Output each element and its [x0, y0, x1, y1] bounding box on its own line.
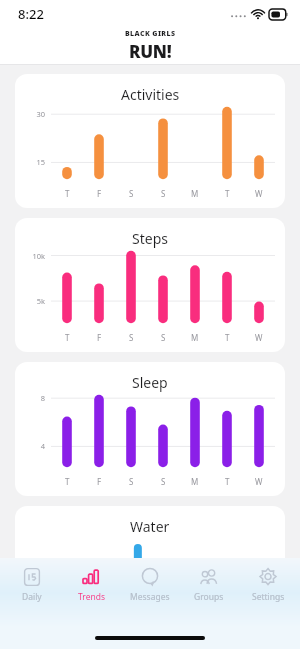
staticText: Steps — [132, 229, 168, 248]
staticText: W — [255, 476, 263, 487]
staticText: T — [225, 332, 230, 343]
staticText: 15 — [19, 157, 45, 167]
staticText: F — [97, 476, 102, 487]
staticText: S — [161, 332, 166, 343]
staticText: 4 — [19, 441, 45, 451]
staticText: 10k — [19, 251, 45, 261]
staticText: T — [225, 188, 230, 199]
staticText: S — [161, 188, 166, 199]
button[interactable]: Sleep — [15, 362, 285, 496]
staticText: Groups — [194, 591, 224, 603]
staticText: Messages — [130, 591, 170, 603]
button[interactable]: Activities — [15, 74, 285, 208]
button[interactable]: Water — [15, 506, 285, 606]
staticText: S — [129, 332, 134, 343]
staticText: Trends — [78, 591, 105, 603]
staticText: T — [225, 476, 230, 487]
staticText: F — [97, 332, 102, 343]
staticText: Activities — [121, 85, 180, 104]
staticText: 5k — [19, 296, 45, 306]
staticText: M — [191, 476, 199, 487]
button[interactable]: Messages — [123, 564, 177, 606]
button[interactable]: Groups — [182, 564, 236, 606]
button[interactable]: Trends — [64, 564, 118, 606]
staticText: Sleep — [132, 373, 168, 392]
staticText: S — [161, 476, 166, 487]
staticText: S — [129, 188, 134, 199]
staticText: M — [191, 332, 199, 343]
staticText: BLACK GIRLS — [125, 29, 176, 39]
staticText: T — [65, 476, 70, 487]
button[interactable]: Daily — [5, 564, 59, 606]
staticText: Daily — [22, 591, 42, 603]
staticText: 30 — [19, 109, 45, 119]
staticText: RUN! — [129, 40, 172, 63]
staticText: F — [97, 188, 102, 199]
staticText: T — [65, 332, 70, 343]
staticText: Water — [130, 517, 170, 536]
staticText: 8 — [19, 393, 45, 403]
button[interactable]: Settings — [241, 564, 295, 606]
staticText: S — [129, 476, 134, 487]
staticText: W — [255, 332, 263, 343]
staticText: T — [65, 188, 70, 199]
staticText: M — [191, 188, 199, 199]
button[interactable]: Steps — [15, 218, 285, 352]
staticText: Settings — [252, 591, 285, 603]
staticText: W — [255, 188, 263, 199]
staticText: 8:22 — [18, 5, 44, 23]
